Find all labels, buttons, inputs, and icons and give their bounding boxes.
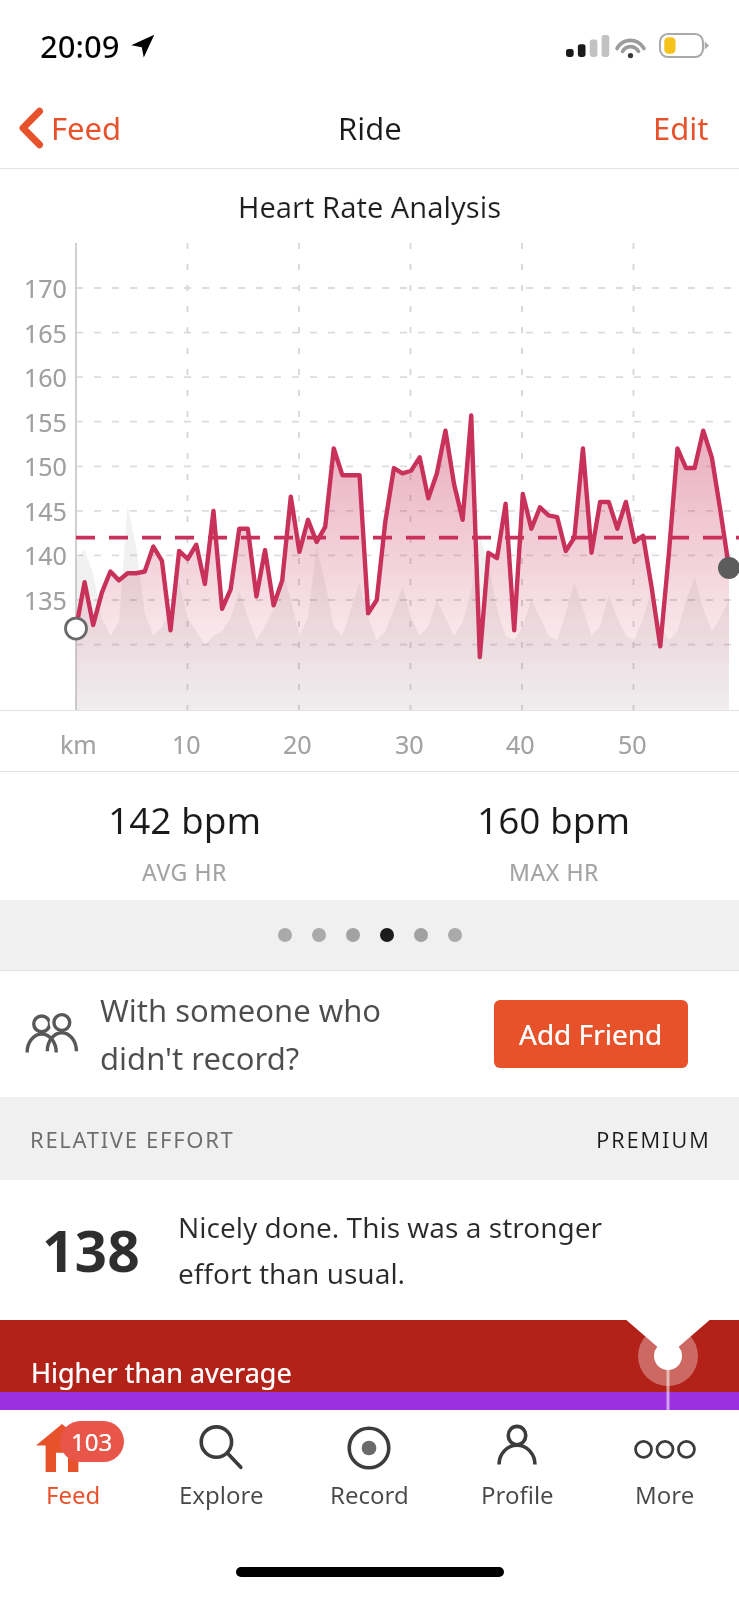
staticText: PREMIUM: [596, 1124, 711, 1154]
staticText: Feed: [51, 107, 122, 149]
staticText: 20: [283, 727, 312, 761]
other: Explore: [198, 1425, 244, 1471]
other: Profile: [494, 1425, 540, 1471]
staticText: Profile: [481, 1478, 554, 1511]
staticText: Heart Rate Analysis: [238, 187, 502, 226]
button[interactable]: 103: [0, 1410, 147, 1536]
button[interactable]: 138: [0, 1180, 739, 1320]
staticText: 150: [24, 449, 67, 483]
button[interactable]: Record: [295, 1410, 443, 1536]
button[interactable]: [448, 928, 462, 942]
staticText: Nicely done. This was a stronger: [178, 1208, 603, 1246]
staticText: 20:09: [40, 25, 120, 67]
button[interactable]: Profile: [443, 1410, 591, 1536]
staticText: 10: [172, 727, 201, 761]
button[interactable]: [278, 928, 292, 942]
staticText: effort than usual.: [178, 1254, 406, 1292]
staticText: 165: [24, 316, 67, 350]
button[interactable]: 160 bpm: [369, 772, 739, 900]
button[interactable]: 142 bpm: [0, 772, 369, 900]
staticText: Feed: [46, 1478, 101, 1511]
staticText: RELATIVE EFFORT: [30, 1124, 235, 1154]
staticText: Higher than average: [31, 1354, 292, 1391]
staticText: 135: [24, 583, 67, 617]
other: More: [636, 1435, 694, 1461]
staticText: 140: [24, 538, 67, 572]
button[interactable]: [346, 928, 360, 942]
staticText: 170: [24, 271, 67, 305]
button[interactable]: More: [591, 1410, 739, 1536]
staticText: Explore: [179, 1478, 264, 1511]
button[interactable]: [312, 928, 326, 942]
staticText: With someone who: [100, 989, 382, 1031]
other: Record: [346, 1425, 392, 1471]
staticText: 40: [506, 727, 535, 761]
button[interactable]: Edit: [645, 99, 717, 157]
staticText: AVG HR: [142, 856, 228, 887]
staticText: More: [635, 1478, 695, 1511]
staticText: 30: [395, 727, 424, 761]
staticText: 103: [71, 1425, 113, 1458]
staticText: 145: [24, 494, 67, 528]
button[interactable]: [414, 928, 428, 942]
staticText: Edit: [653, 107, 709, 149]
button[interactable]: [380, 928, 394, 942]
staticText: 50: [618, 727, 647, 761]
staticText: Ride: [338, 107, 402, 149]
staticText: 155: [24, 405, 67, 439]
button[interactable]: Add Friend: [494, 1000, 688, 1068]
staticText: km: [60, 727, 97, 761]
staticText: MAX HR: [509, 856, 599, 887]
staticText: didn't record?: [100, 1037, 300, 1079]
button[interactable]: Explore: [147, 1410, 295, 1536]
staticText: Record: [330, 1478, 409, 1511]
staticText: 142 bpm: [108, 794, 262, 844]
staticText: Add Friend: [519, 1015, 663, 1053]
staticText: 160: [24, 360, 67, 394]
button[interactable]: Feed: [14, 99, 128, 157]
staticText: 160 bpm: [477, 794, 631, 844]
staticText: 138: [42, 1211, 140, 1289]
